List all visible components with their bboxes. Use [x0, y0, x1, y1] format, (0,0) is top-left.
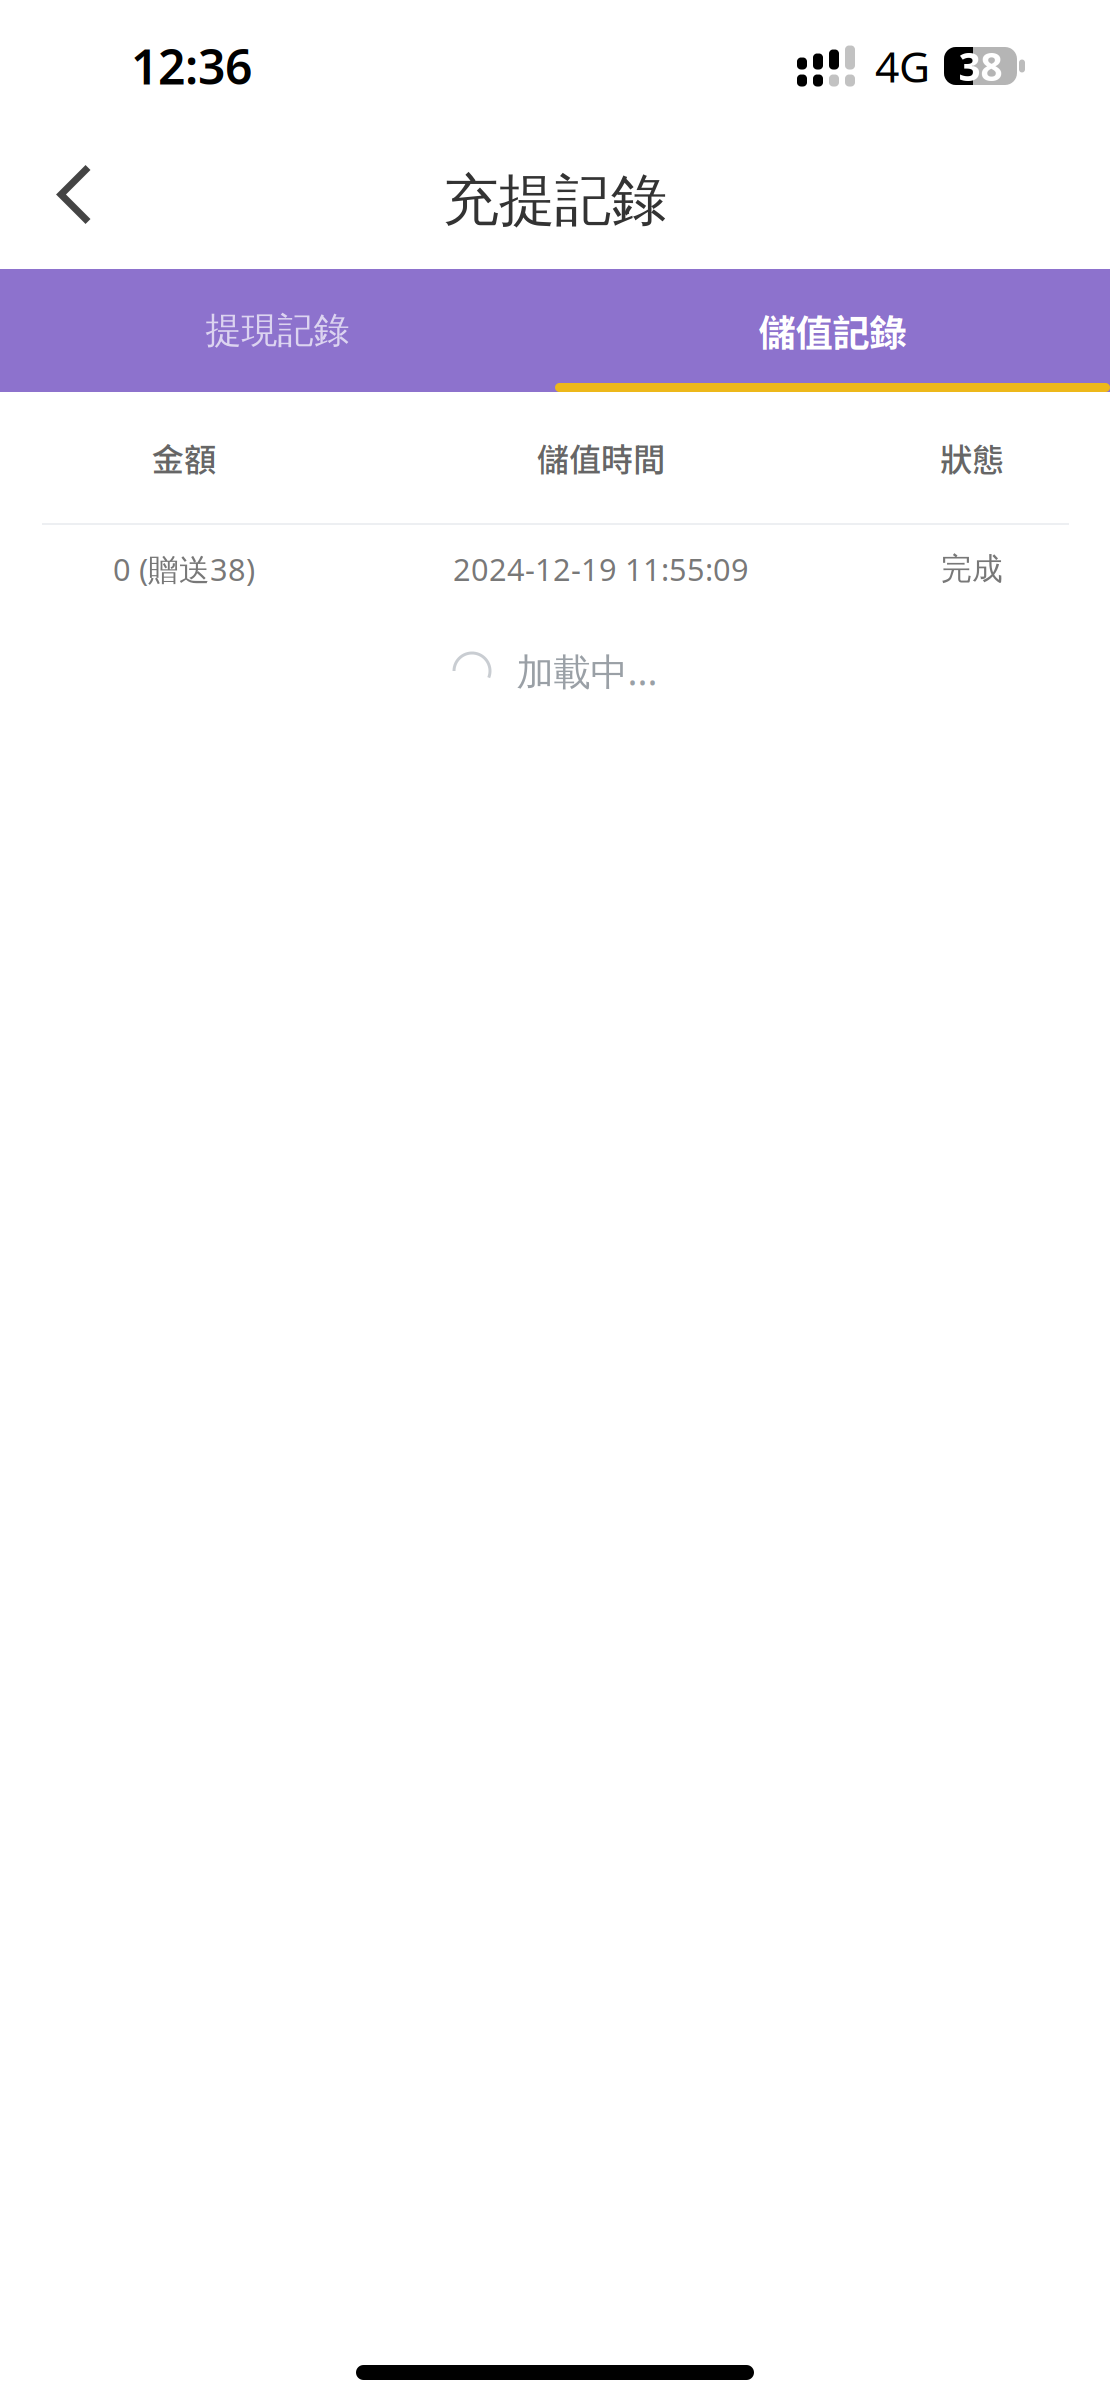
staticText: 金額: [152, 434, 216, 481]
button[interactable]: 儲值記錄: [555, 269, 1110, 392]
staticText: 12:36: [131, 34, 252, 98]
staticText: 0 (贈送38): [113, 549, 255, 589]
staticText: 4G: [875, 38, 930, 94]
staticText: 儲值記錄: [758, 303, 906, 358]
staticText: 完成: [941, 550, 1003, 588]
staticText: 2024-12-19 11:55:09: [453, 549, 749, 589]
staticText: 儲值時間: [537, 434, 665, 481]
staticText: 提現記錄: [205, 308, 349, 353]
button[interactable]: 0 (贈送38): [0, 525, 1110, 613]
staticText: 38: [958, 40, 1002, 92]
staticText: 加載中...: [516, 646, 657, 696]
button[interactable]: Back: [0, 145, 128, 255]
staticText: 充提記錄: [443, 166, 667, 235]
button[interactable]: 提現記錄: [0, 269, 555, 392]
staticText: 狀態: [940, 434, 1004, 481]
